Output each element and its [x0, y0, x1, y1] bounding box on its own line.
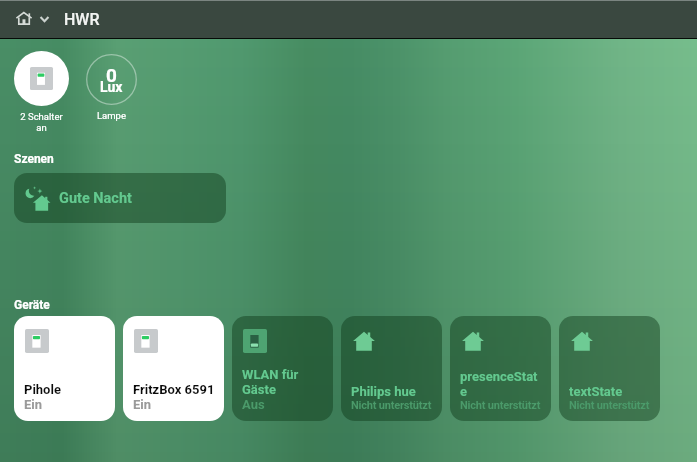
staticText: 2 Schalter an [20, 111, 63, 133]
staticText: 0 [106, 64, 117, 86]
staticText: presenceState [460, 369, 542, 399]
staticText: textState [569, 384, 623, 399]
staticText: Nicht unterstützt [569, 399, 650, 412]
button[interactable]: Philips hue [341, 316, 442, 421]
button[interactable]: 2 Schalter an [7, 51, 76, 133]
staticText: Ein [24, 397, 43, 412]
staticText: Gute Nacht [59, 190, 132, 207]
staticText: Lux [100, 79, 123, 95]
button[interactable]: FritzBox 6591 [123, 316, 224, 421]
staticText: HWR [64, 10, 100, 29]
staticText: Nicht unterstützt [351, 399, 432, 412]
button[interactable]: presenceState [450, 316, 551, 421]
staticText: FritzBox 6591 [133, 382, 215, 397]
staticText: Geräte [14, 298, 50, 312]
staticText: Nicht unterstützt [460, 399, 541, 412]
button[interactable]: Choose area [16, 5, 49, 34]
staticText: Philips hue [351, 384, 416, 399]
button[interactable]: textState [559, 316, 660, 421]
staticText: Lampe [97, 110, 126, 121]
button[interactable]: WLAN für Gäste [232, 316, 333, 421]
staticText: Szenen [14, 152, 54, 166]
button[interactable]: Gute Nacht [14, 173, 226, 223]
staticText: Ein [133, 397, 152, 412]
staticText: Pihole [24, 382, 61, 397]
staticText: Aus [242, 397, 265, 412]
button[interactable]: 0 [86, 54, 137, 121]
staticText: WLAN für Gäste [242, 367, 324, 397]
button[interactable]: Pihole [14, 316, 115, 421]
